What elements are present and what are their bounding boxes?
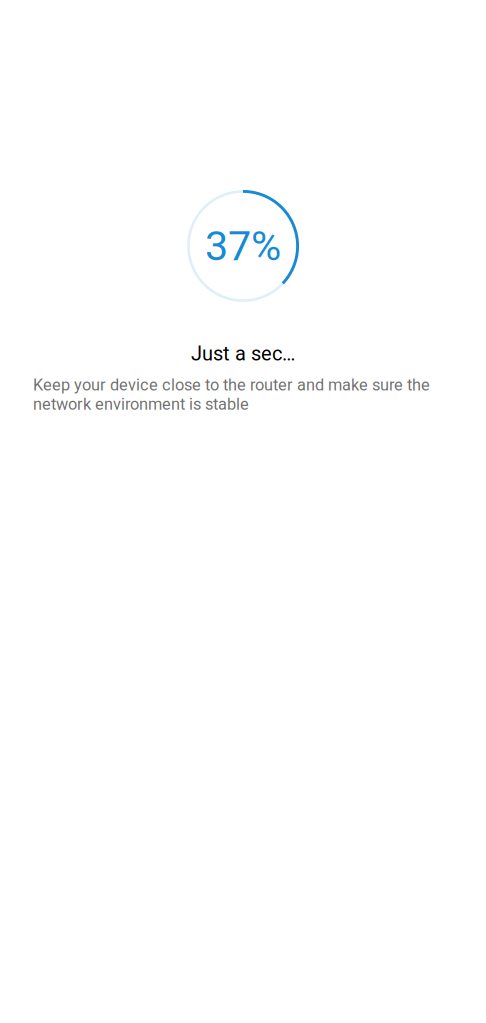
staticText: Keep your device close to the router and… <box>33 375 430 414</box>
staticText: Just a sec… <box>191 342 295 365</box>
staticText: 37% <box>205 222 281 270</box>
